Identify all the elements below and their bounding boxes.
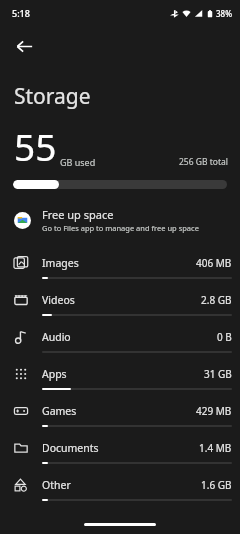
staticText: 2.8 GB: [201, 293, 232, 307]
staticText: 55: [14, 121, 57, 171]
staticText: Documents: [42, 441, 99, 455]
staticText: Free up space: [42, 207, 114, 222]
button[interactable]: Games: [0, 397, 240, 434]
button[interactable]: Audio: [0, 323, 240, 360]
staticText: Audio: [42, 330, 71, 344]
staticText: Videos: [42, 293, 75, 307]
staticText: Games: [42, 404, 77, 418]
staticText: 0 B: [217, 330, 232, 344]
button[interactable]: Documents: [0, 434, 240, 471]
button[interactable]: Back: [4, 26, 44, 66]
staticText: 256 GB total: [179, 156, 228, 168]
staticText: 1.6 GB: [201, 478, 232, 492]
staticText: Storage: [14, 82, 91, 111]
button[interactable]: Images: [0, 249, 240, 286]
staticText: 429 MB: [196, 404, 232, 418]
staticText: Go to Files app to manage and free up sp…: [42, 223, 199, 233]
staticText: Apps: [42, 367, 67, 381]
button[interactable]: Other: [0, 471, 240, 508]
staticText: Images: [42, 256, 79, 270]
staticText: 1.4 MB: [199, 441, 232, 455]
staticText: GB used: [60, 156, 96, 168]
staticText: 5:18: [12, 7, 30, 19]
staticText: 31 GB: [204, 367, 232, 381]
staticText: 38%: [216, 8, 232, 19]
button[interactable]: Apps: [0, 360, 240, 397]
button[interactable]: Free up space: [0, 203, 240, 237]
button[interactable]: Videos: [0, 286, 240, 323]
staticText: 406 MB: [196, 256, 232, 270]
staticText: Other: [42, 478, 71, 492]
